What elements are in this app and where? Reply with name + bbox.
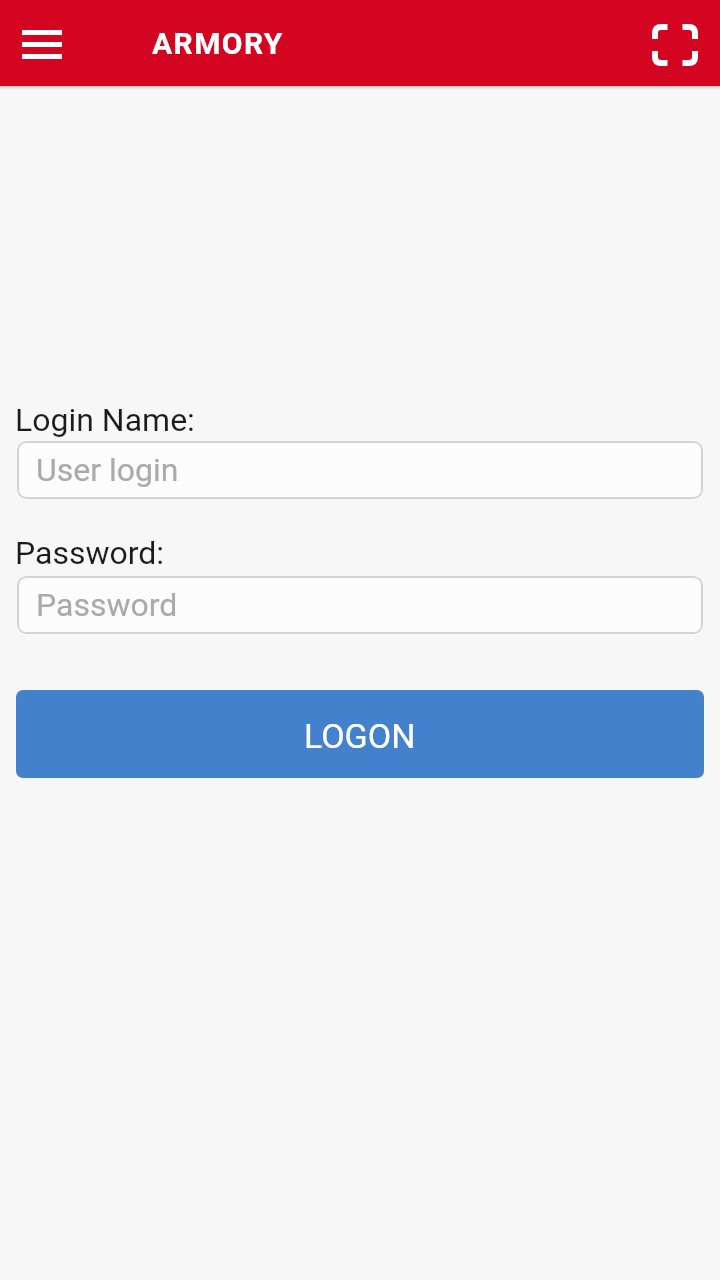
staticText: ARMORY bbox=[152, 26, 284, 61]
button[interactable]: Password bbox=[17, 576, 703, 634]
button[interactable] bbox=[642, 7, 714, 79]
staticText: User login bbox=[36, 451, 179, 489]
staticText: Login Name: bbox=[15, 401, 195, 439]
staticText: LOGON bbox=[304, 716, 416, 756]
button[interactable]: LOGON bbox=[16, 690, 704, 778]
staticText: Password bbox=[36, 586, 178, 624]
button[interactable]: User login bbox=[17, 441, 703, 499]
button[interactable] bbox=[6, 7, 78, 79]
staticText: Password: bbox=[15, 534, 165, 572]
